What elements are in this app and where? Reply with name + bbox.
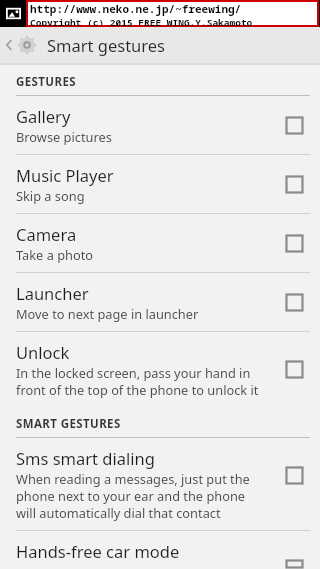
button[interactable]: Toggle Unlock	[268, 360, 320, 379]
staticText: Launcher	[16, 282, 89, 304]
button[interactable]: Unlock	[0, 332, 320, 407]
button[interactable]: Camera	[0, 214, 320, 272]
staticText: Browse pictures	[16, 128, 112, 145]
button[interactable]: Sms smart dialing	[0, 438, 320, 530]
staticText: Sms smart dialing	[16, 447, 155, 469]
button[interactable]: Launcher	[0, 273, 320, 331]
button[interactable]: Toggle Camera	[268, 234, 320, 253]
staticText: phone next to your ear and the phone	[16, 487, 246, 504]
staticText: Copyright (c) 2015 FREE WING,Y.Sakamoto	[30, 16, 253, 26]
button[interactable]: Navigate up	[0, 34, 320, 56]
button[interactable]: Toggle Launcher	[268, 293, 320, 312]
button[interactable]: Toggle Sms smart dialing	[268, 466, 320, 485]
staticText: will automatically dial that contact	[16, 504, 221, 521]
button[interactable]: Toggle Hands-free car mode	[268, 559, 320, 569]
staticText: When reading a messages, just put the	[16, 470, 250, 487]
button[interactable]: Hands-free car mode	[0, 531, 320, 569]
staticText: Camera	[16, 223, 77, 245]
button[interactable]: Toggle Music Player	[268, 175, 320, 194]
staticText: Unlock	[16, 341, 70, 363]
staticText: Smart gestures	[47, 34, 166, 56]
button[interactable]: Gallery	[0, 96, 320, 154]
staticText: Skip a song	[16, 187, 85, 204]
button[interactable]: Music Player	[0, 155, 320, 213]
staticText: Move to next page in launcher	[16, 305, 199, 322]
button[interactable]: Toggle Gallery	[268, 116, 320, 135]
staticText: front of the top of the phone to unlock …	[16, 381, 259, 398]
staticText: http://www.neko.ne.jp/~freewing/	[30, 1, 242, 16]
staticText: Music Player	[16, 164, 114, 186]
staticText: Take a photo	[16, 246, 94, 263]
staticText: Gallery	[16, 105, 71, 127]
staticText: Hands-free car mode	[16, 540, 180, 560]
staticText: SMART GESTURES	[16, 416, 121, 432]
staticText: GESTURES	[16, 74, 76, 90]
staticText: In the locked screen, pass your hand in	[16, 364, 251, 381]
